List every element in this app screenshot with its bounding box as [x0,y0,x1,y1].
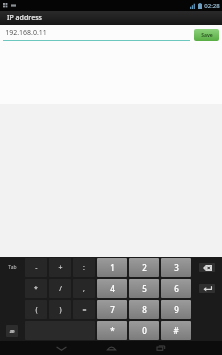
button[interactable]: , [73,279,95,298]
button[interactable]: # [161,321,191,340]
button[interactable]: + [49,258,71,277]
staticText: 6 [174,283,179,294]
staticText: 192.168.0.11 [5,28,47,38]
button[interactable]: / [49,279,71,298]
button[interactable]: : [73,258,95,277]
staticText: 9 [174,304,179,315]
staticText: Save [201,32,213,39]
staticText: 8 [142,304,147,315]
staticText: 2 [142,262,147,273]
button[interactable]: ( [25,300,47,319]
button[interactable]: 9 [161,300,191,319]
staticText: 7 [110,304,115,315]
button[interactable]: Save [194,29,219,41]
staticText: , [83,284,85,294]
staticText: 02:28 [204,2,220,10]
button[interactable]: 1 [97,258,127,277]
button[interactable]: * [25,279,47,298]
staticText: æ [9,327,15,335]
staticText: : [83,263,85,273]
button[interactable]: Home [86,341,136,355]
button[interactable]: 8 [129,300,159,319]
button[interactable]: Hide keyboard [36,341,86,355]
staticText: 4 [110,283,115,294]
button[interactable]: Enter [199,284,215,293]
staticText: ) [59,305,62,315]
button[interactable]: 0 [129,321,159,340]
staticText: * [110,325,115,336]
staticText: / [59,284,62,294]
staticText: - [35,263,38,273]
staticText: IP address [7,13,42,23]
button[interactable]: 2 [129,258,159,277]
staticText: # [173,325,179,336]
staticText: * [34,284,38,294]
button[interactable]: Recent apps [136,341,186,355]
button[interactable]: 3 [161,258,191,277]
button[interactable]: 4 [97,279,127,298]
staticText: = [82,305,87,315]
button[interactable]: 7 [97,300,127,319]
button[interactable]: Tab [0,257,24,278]
staticText: 1 [110,262,115,273]
button[interactable]: = [73,300,95,319]
button[interactable]: - [25,258,47,277]
staticText: 5 [142,283,147,294]
staticText: ( [35,305,38,315]
staticText: 3 [174,262,179,273]
button[interactable]: * [97,321,127,340]
button[interactable]: Backspace [199,263,215,272]
staticText: Tab [8,264,17,271]
staticText: + [58,263,63,273]
button[interactable]: 5 [129,279,159,298]
button[interactable]: 6 [161,279,191,298]
button[interactable]: Switch keyboard [6,325,18,337]
button[interactable]: ) [49,300,71,319]
staticText: 0 [142,325,147,336]
